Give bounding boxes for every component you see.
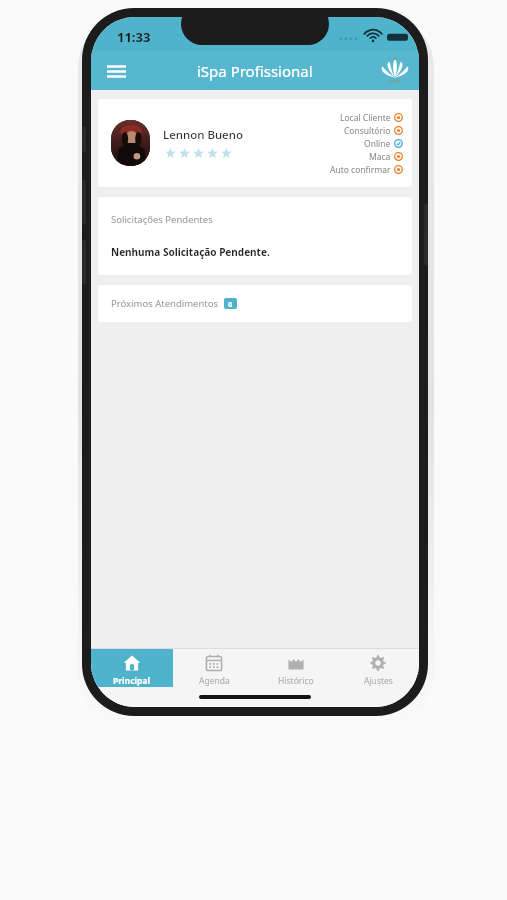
staticText: Online [364,138,391,150]
button[interactable]: Solicitações Pendentes [98,197,412,275]
staticText: iSpa Profissional [197,61,313,81]
button[interactable]: iSpa logo [377,53,413,89]
button[interactable]: Histórico [255,649,337,687]
staticText: Consultório [344,125,391,137]
staticText: Agenda [199,675,230,687]
staticText: Principal [113,675,151,687]
staticText: Próximos Atendimentos [111,297,219,310]
button[interactable]: Consultório [344,124,403,137]
staticText: Solicitações Pendentes [111,213,213,226]
button[interactable]: Lennon Bueno [98,99,412,187]
button[interactable]: Principal [91,649,173,687]
button[interactable]: Maca [369,150,403,163]
button[interactable]: Ajustes [337,649,419,687]
button[interactable]: Local Cliente [340,111,403,124]
staticText: Nenhuma Solicitação Pendente. [111,245,270,259]
staticText: Auto confirmar [330,164,391,176]
staticText: Lennon Bueno [163,127,243,143]
button[interactable]: Auto confirmar [330,163,403,176]
button[interactable]: Próximos Atendimentos [98,285,412,322]
button[interactable]: Menu [99,54,133,88]
staticText: Local Cliente [340,112,391,124]
staticText: Maca [369,151,391,163]
button[interactable]: Online [364,137,403,150]
staticText: 11:33 [117,28,151,46]
staticText: Ajustes [364,675,393,687]
button[interactable]: Agenda [173,649,255,687]
staticText: Histórico [278,675,314,687]
staticText: 0 [228,299,233,309]
